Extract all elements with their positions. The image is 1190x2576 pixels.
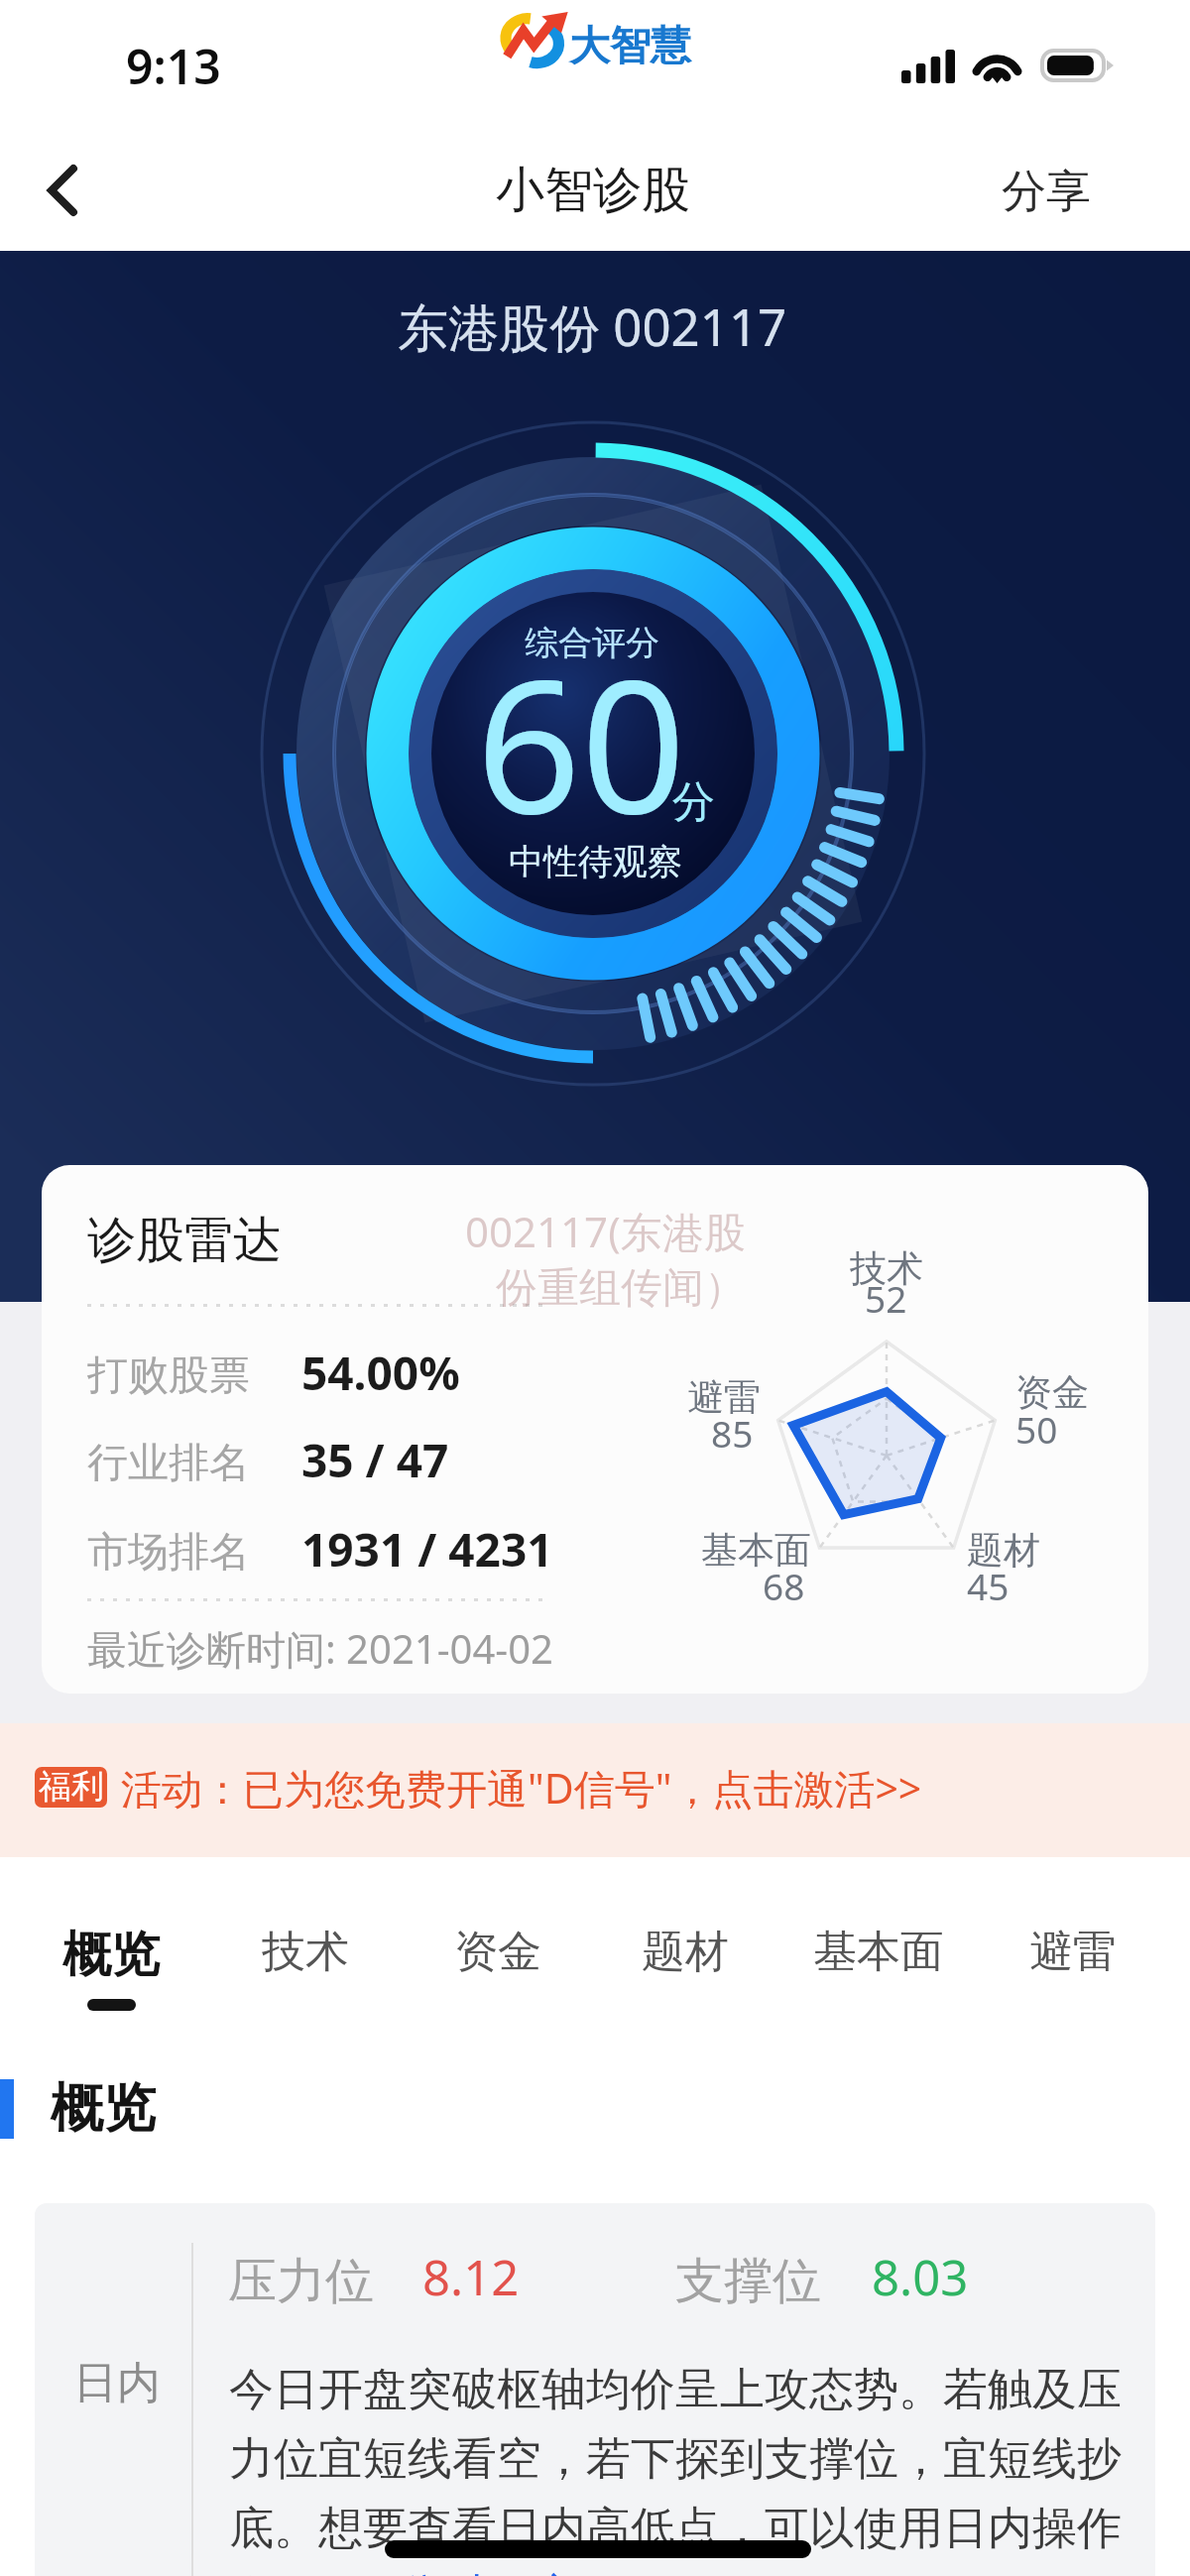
staticText: 份重组传闻） xyxy=(496,1262,746,1315)
staticText: 1931 / 4231 xyxy=(301,1518,553,1581)
button[interactable]: 资金 xyxy=(432,1897,567,1998)
staticText: 最近诊断时间: 2021-04-02 xyxy=(87,1621,553,1676)
staticText: 45 xyxy=(967,1561,1010,1610)
staticText: 概览 xyxy=(62,1925,160,1986)
button[interactable]: 概览 xyxy=(41,1897,182,1998)
staticText: 60 xyxy=(476,617,686,867)
button[interactable]: 基本面 xyxy=(791,1897,971,1998)
staticText: 诊股雷达 xyxy=(87,1210,282,1271)
button[interactable]: 避雷 xyxy=(1008,1897,1142,1998)
button[interactable]: 诊股雷达 xyxy=(42,1165,1148,1694)
staticText: 大智慧 xyxy=(569,21,691,72)
staticText: 技术 xyxy=(262,1925,349,1979)
button[interactable]: 技术 xyxy=(240,1897,370,1998)
staticText: 9:13 xyxy=(126,34,221,98)
staticText: 避雷 xyxy=(1029,1925,1117,1979)
staticText: 8.12 xyxy=(422,2244,520,2310)
staticText: 分时顶底 xyxy=(398,2568,576,2576)
button[interactable]: 福利 xyxy=(0,1723,1190,1857)
staticText: 东港股份 002117 xyxy=(398,292,787,361)
staticText: 综合评分 xyxy=(525,622,659,664)
staticText: 002117(东港股 xyxy=(465,1203,746,1259)
staticText: 打败股票 xyxy=(87,1350,250,1402)
staticText: 压力位 xyxy=(228,2251,374,2312)
staticText: 今日开盘突破枢轴均价呈上攻态势。若触及压力位宜短线看空，若下探到支撑位，宜短线抄… xyxy=(229,2362,1133,2576)
staticText: 35 / 47 xyxy=(301,1429,449,1491)
staticText: 避雷 xyxy=(687,1374,761,1421)
button[interactable]: Back xyxy=(0,129,124,251)
staticText: 50 xyxy=(1015,1404,1058,1454)
button[interactable]: 题材 xyxy=(620,1897,755,1998)
staticText: 8.03 xyxy=(872,2244,969,2310)
staticText: 基本面 xyxy=(701,1527,811,1574)
staticText: 85 xyxy=(711,1408,754,1458)
staticText: 概览 xyxy=(51,2075,156,2142)
staticText: 行业排名 xyxy=(87,1438,250,1489)
staticText: 小智诊股 xyxy=(496,160,690,221)
staticText: 52 xyxy=(865,1273,907,1323)
staticText: 福利 xyxy=(39,1767,104,1807)
staticText: 54.00% xyxy=(301,1342,460,1404)
staticText: 技术 xyxy=(850,1245,923,1292)
staticText: 活动：已为您免费开通"D信号"，点击激活>> xyxy=(121,1760,922,1815)
button[interactable]: 分享 xyxy=(967,139,1126,241)
staticText: 分享 xyxy=(1002,164,1091,220)
staticText: 资金 xyxy=(1015,1369,1089,1416)
staticText: 题材 xyxy=(642,1925,729,1979)
staticText: 资金 xyxy=(454,1925,541,1979)
staticText: 68 xyxy=(763,1561,805,1610)
staticText: 分 xyxy=(672,775,715,829)
staticText: 题材 xyxy=(967,1527,1040,1574)
staticText: 市场排名 xyxy=(87,1527,250,1579)
staticText: 基本面 xyxy=(813,1925,944,1979)
staticText: 支撑位 xyxy=(675,2251,821,2312)
staticText: 日内 xyxy=(73,2356,161,2410)
staticText: 中性待观察 xyxy=(509,840,682,883)
